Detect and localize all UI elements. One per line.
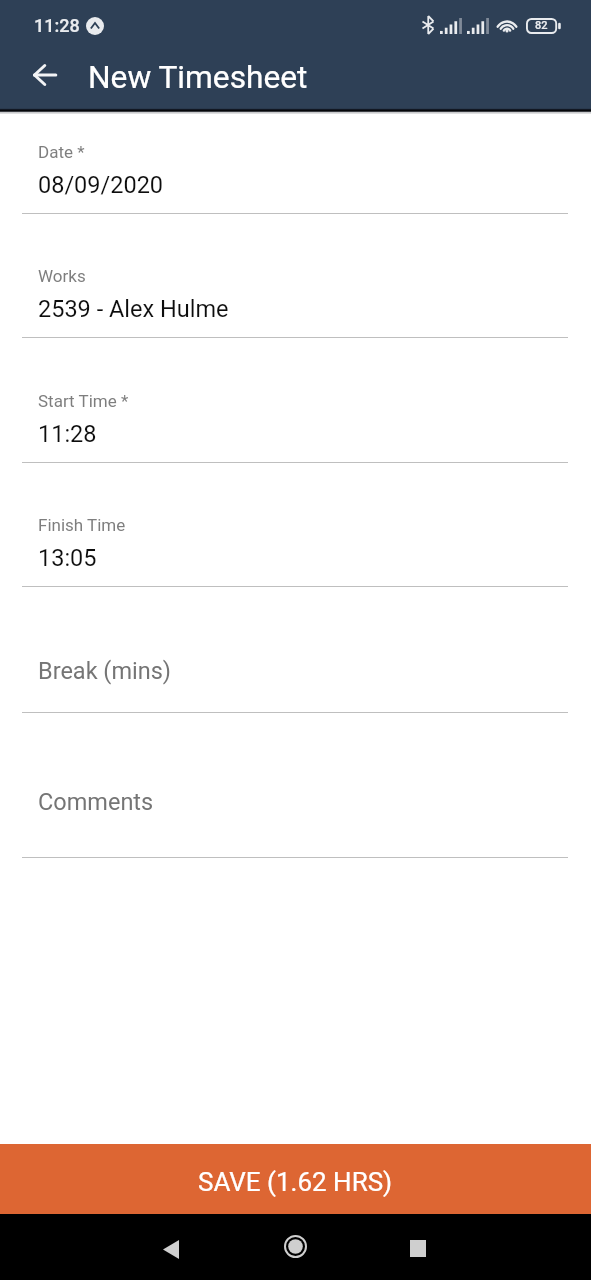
staticText: Break (mins): [38, 657, 172, 685]
button[interactable]: Back: [21, 51, 69, 99]
button[interactable]: Home: [271, 1222, 319, 1270]
button[interactable]: Back: [147, 1225, 195, 1273]
staticText: 2539 - Alex Hulme: [38, 295, 229, 323]
button[interactable]: SAVE (1.62 HRS): [0, 1144, 591, 1214]
staticText: 13:05: [38, 544, 97, 572]
staticText: 08/09/2020: [38, 171, 164, 199]
staticText: Start Time *: [38, 391, 129, 411]
staticText: 11:28: [34, 15, 80, 36]
staticText: SAVE (1.62 HRS): [198, 1167, 393, 1197]
button[interactable]: Date *: [0, 108, 591, 213]
button[interactable]: Break (mins): [0, 587, 591, 712]
button[interactable]: Comments: [0, 713, 591, 857]
staticText: New Timesheet: [88, 59, 308, 96]
staticText: Works: [38, 266, 86, 286]
button[interactable]: Works: [0, 214, 591, 337]
staticText: Date *: [38, 142, 85, 162]
button[interactable]: Finish Time: [0, 463, 591, 586]
button[interactable]: Recent apps: [394, 1224, 442, 1272]
staticText: 11:28: [38, 420, 97, 448]
staticText: Finish Time: [38, 515, 126, 535]
staticText: 82: [535, 19, 548, 32]
staticText: Comments: [38, 788, 154, 816]
button[interactable]: Start Time *: [0, 338, 591, 462]
